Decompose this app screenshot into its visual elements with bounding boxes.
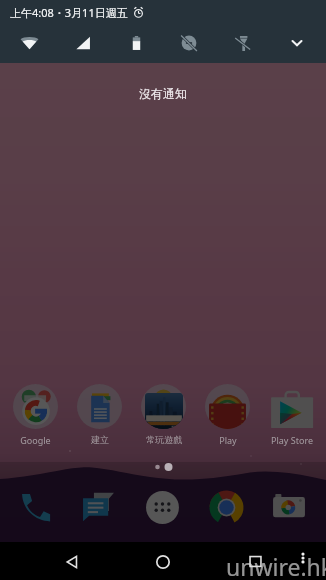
button[interactable]: Flashlight [225, 26, 259, 60]
button[interactable]: Wi-Fi [12, 26, 46, 60]
staticText: Play [219, 434, 237, 446]
button[interactable]: Chrome [204, 485, 248, 529]
button[interactable]: Do not disturb [172, 26, 206, 60]
button[interactable]: 常玩遊戲 [131, 380, 195, 452]
button[interactable]: Play Store [259, 380, 323, 452]
button[interactable]: Phone [13, 485, 57, 529]
button[interactable]: Camera [267, 485, 311, 529]
staticText: Play Store [271, 434, 313, 446]
button[interactable]: Play [195, 380, 259, 452]
button[interactable]: Google [3, 380, 67, 452]
button[interactable]: Recent apps [237, 543, 274, 580]
button[interactable]: Expand quick settings [280, 26, 314, 60]
staticText: 常玩遊戲 [146, 434, 182, 445]
button[interactable]: Home [144, 543, 181, 580]
button[interactable]: All apps [140, 485, 184, 529]
button[interactable]: 建立 [67, 380, 131, 452]
button[interactable]: Back [53, 543, 90, 580]
staticText: 上午4:08・3月11日週五 [10, 5, 128, 20]
staticText: Google [20, 434, 51, 446]
button[interactable]: More options [288, 543, 318, 573]
button[interactable]: Battery [119, 26, 153, 60]
staticText: 建立 [91, 434, 109, 445]
staticText: unwire.hk [226, 551, 326, 580]
button[interactable]: Mobile signal [66, 26, 100, 60]
button[interactable]: Messages [76, 485, 120, 529]
staticText: 沒有通知 [139, 86, 187, 101]
